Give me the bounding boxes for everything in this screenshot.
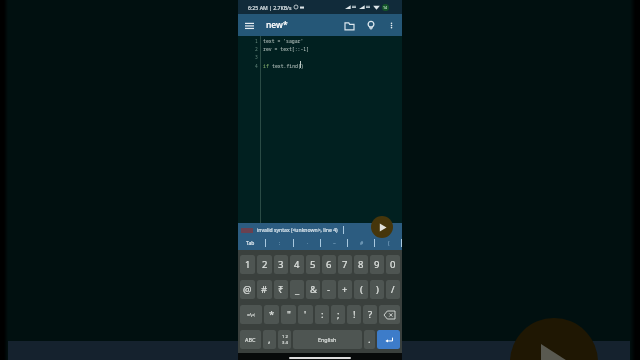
button[interactable]: / (386, 280, 400, 299)
button[interactable]: " (281, 305, 296, 324)
staticText: ₹ (278, 283, 284, 296)
staticText: English (318, 336, 337, 343)
staticText: : (279, 240, 281, 247)
button[interactable]: 7 (338, 255, 352, 274)
staticText: text = 'sagar' (263, 38, 304, 45)
button[interactable]: 1 (240, 255, 255, 274)
staticText: ( (388, 240, 390, 247)
staticText: _ (295, 283, 300, 296)
staticText: 3 (255, 54, 258, 60)
button[interactable]: 8 (354, 255, 368, 274)
staticText: 0 (390, 258, 396, 271)
button[interactable]: 0 (386, 255, 400, 274)
staticText: 1 2 (282, 334, 288, 340)
button[interactable]: 5 (306, 255, 320, 274)
staticText: 3 4 (282, 340, 288, 346)
staticText: # (261, 283, 268, 296)
staticText: & (310, 283, 317, 296)
button[interactable]: : (315, 305, 329, 324)
staticText: ? (368, 308, 373, 321)
button[interactable]: ; (331, 305, 345, 324)
staticText: new* (266, 19, 288, 31)
staticText: Tab (246, 240, 255, 247)
staticText: 14 (383, 5, 388, 10)
staticText: if (263, 63, 272, 70)
button[interactable]: 6 (322, 255, 336, 274)
button[interactable]: @ (240, 280, 255, 299)
button[interactable]: · (294, 236, 321, 250)
staticText: " (287, 308, 291, 321)
button[interactable]: Backspace (379, 305, 400, 324)
button[interactable]: ' (298, 305, 313, 324)
staticText: # (360, 240, 364, 247)
staticText: 8 (358, 258, 364, 271)
button[interactable]: Open folder (340, 16, 359, 35)
staticText: / (391, 283, 395, 296)
staticText: + (342, 283, 348, 296)
button[interactable]: . (364, 330, 375, 349)
button[interactable]: ~ (321, 236, 348, 250)
button[interactable]: : (266, 236, 294, 250)
button[interactable]: # (257, 280, 272, 299)
staticText: ; (337, 308, 340, 321)
staticText: 3 (278, 258, 284, 271)
staticText: ~ (333, 240, 336, 247)
staticText: · (307, 240, 309, 247)
button[interactable]: 2 (257, 255, 272, 274)
button[interactable]: Run (371, 216, 393, 238)
staticText: - (327, 283, 331, 296)
staticText: 7 (342, 258, 348, 271)
button[interactable]: 3 (274, 255, 288, 274)
button[interactable]: + (338, 280, 352, 299)
button[interactable]: ) (370, 280, 384, 299)
staticText: 4 (255, 63, 258, 69)
button[interactable]: - (322, 280, 336, 299)
staticText: rev = text[::-1] (263, 46, 310, 53)
staticText: ) (376, 283, 379, 296)
button[interactable]: ABC (240, 330, 261, 349)
staticText: . (368, 333, 371, 346)
button[interactable]: Hint (361, 16, 380, 35)
button[interactable]: ? (363, 305, 377, 324)
staticText: ' (304, 308, 307, 321)
button[interactable]: * (264, 305, 279, 324)
button[interactable]: & (306, 280, 320, 299)
staticText: text.find() (272, 63, 304, 70)
button[interactable]: Enter (377, 330, 400, 349)
staticText: 9 (374, 258, 380, 271)
button[interactable]: =\< (240, 305, 262, 324)
staticText: 1 (245, 258, 251, 271)
staticText: ( (360, 283, 363, 296)
button[interactable]: _ (290, 280, 304, 299)
staticText: ABC (245, 336, 256, 343)
button[interactable]: ₹ (274, 280, 288, 299)
button[interactable]: ( (375, 236, 402, 250)
staticText: 6:25 AM | 2.7KB/s (248, 4, 292, 11)
button[interactable]: Tab (238, 236, 266, 250)
button[interactable]: , (263, 330, 276, 349)
staticText: , (268, 333, 271, 346)
staticText: 5 (310, 258, 316, 271)
staticText: invalid syntax (<unknown>, line 4) (257, 227, 338, 234)
button[interactable]: Menu (238, 14, 260, 36)
button[interactable]: # (348, 236, 375, 250)
staticText: =\< (247, 311, 256, 318)
staticText: 2 (255, 46, 258, 52)
button[interactable]: English (293, 330, 362, 349)
button[interactable]: ( (354, 280, 368, 299)
button[interactable]: ! (347, 305, 361, 324)
button[interactable]: 9 (370, 255, 384, 274)
staticText: 1 (255, 38, 258, 44)
staticText: @ (243, 283, 252, 296)
staticText: : (321, 308, 324, 321)
button[interactable]: Numbers (278, 330, 291, 349)
staticText: 2 (262, 258, 268, 271)
staticText: ! (353, 308, 356, 321)
staticText: 6 (326, 258, 332, 271)
staticText: * (269, 308, 275, 321)
button[interactable]: 4 (290, 255, 304, 274)
staticText: 4 (294, 258, 300, 271)
button[interactable]: More options (382, 16, 400, 34)
